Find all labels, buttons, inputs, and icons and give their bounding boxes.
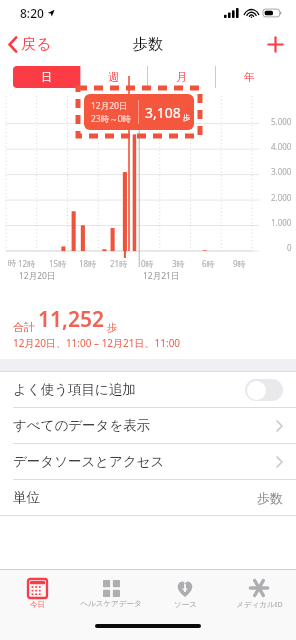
staticText: 日 (41, 70, 52, 84)
button[interactable]: 戻る (0, 31, 60, 58)
button[interactable]: データソースとアクセス (0, 444, 296, 479)
staticText: 0時 (141, 258, 154, 269)
button[interactable]: 12月20日 (84, 94, 194, 130)
button[interactable]: 今日 (0, 570, 74, 618)
staticText: 歩 (107, 321, 117, 334)
staticText: 6時 (202, 258, 215, 269)
staticText: 時 (8, 258, 16, 268)
staticText: 3時 (172, 258, 185, 269)
staticText: 4,000 (271, 141, 292, 150)
staticText: 月 (176, 70, 187, 84)
button[interactable]: 年 (215, 66, 283, 88)
staticText: 3,000 (271, 166, 292, 175)
staticText: 21時 (110, 258, 128, 269)
staticText: 歩数 (257, 490, 283, 506)
staticText: 今日 (30, 600, 45, 609)
staticText: 戻る (21, 35, 52, 54)
staticText: 歩 (183, 113, 187, 122)
staticText: よく使う項目に追加 (13, 381, 136, 398)
button[interactable]: 月 (147, 66, 215, 88)
staticText: 歩数 (133, 35, 163, 54)
staticText: 0 (287, 242, 292, 251)
button[interactable]: Add to Favorites toggle (245, 379, 283, 401)
staticText: メディカルID (236, 599, 283, 609)
staticText: 12月20日 (19, 270, 56, 282)
staticText: データソースとアクセス (13, 453, 165, 470)
button[interactable]: よく使う項目に追加 (0, 372, 296, 407)
staticText: 15時 (49, 258, 67, 269)
staticText: ソース (174, 600, 197, 609)
button[interactable]: 単位 (0, 480, 296, 515)
staticText: 9時 (233, 258, 246, 269)
staticText: 11,252 (38, 305, 104, 334)
button[interactable]: メディカルID (222, 570, 296, 618)
button[interactable]: 週 (80, 66, 147, 88)
staticText: 週 (108, 70, 119, 84)
staticText: 5,000 (271, 116, 292, 125)
staticText: 8:20 (20, 5, 44, 21)
staticText: 12時 (18, 258, 36, 269)
staticText: 18時 (79, 258, 97, 269)
staticText: 12月21日 (143, 270, 180, 282)
button[interactable]: Add (255, 30, 296, 59)
staticText: 12月20日、11:00 – 12月21日、11:00 (13, 336, 181, 350)
button[interactable]: すべてのデータを表示 (0, 408, 296, 443)
staticText: すべてのデータを表示 (13, 417, 151, 434)
button[interactable]: ヘルスケアデータ (74, 570, 148, 618)
staticText: 12月20日 (91, 100, 128, 112)
staticText: 23時～0時 (91, 113, 132, 125)
staticText: 1,000 (271, 217, 292, 226)
staticText: 単位 (13, 489, 40, 506)
staticText: 2,000 (271, 192, 292, 201)
button[interactable]: ソース (148, 570, 222, 618)
staticText: 3,108 (145, 103, 181, 122)
staticText: ヘルスケアデータ (80, 599, 142, 608)
button[interactable]: 日 (13, 66, 80, 88)
staticText: 年 (244, 70, 255, 84)
staticText: 合計 (13, 320, 35, 334)
